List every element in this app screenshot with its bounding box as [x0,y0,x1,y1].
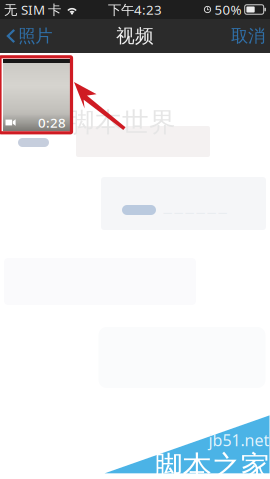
staticText: 视频 [116,24,154,47]
button[interactable]: Video 0:28 [3,59,70,131]
staticText: 无 SIM 卡 [4,1,61,18]
staticText: 照片 [18,25,52,47]
staticText: 脚本世界 [68,106,176,139]
staticText: 脚本之家 [153,449,269,479]
staticText: 0:28 [38,114,66,131]
button[interactable]: 取消 [226,21,270,51]
button[interactable]: 照片 [0,21,58,51]
staticText: 取消 [231,25,265,47]
staticText: 50% [215,1,242,18]
staticText: jb51.net [208,429,269,451]
staticText: 下午4:23 [108,1,162,18]
